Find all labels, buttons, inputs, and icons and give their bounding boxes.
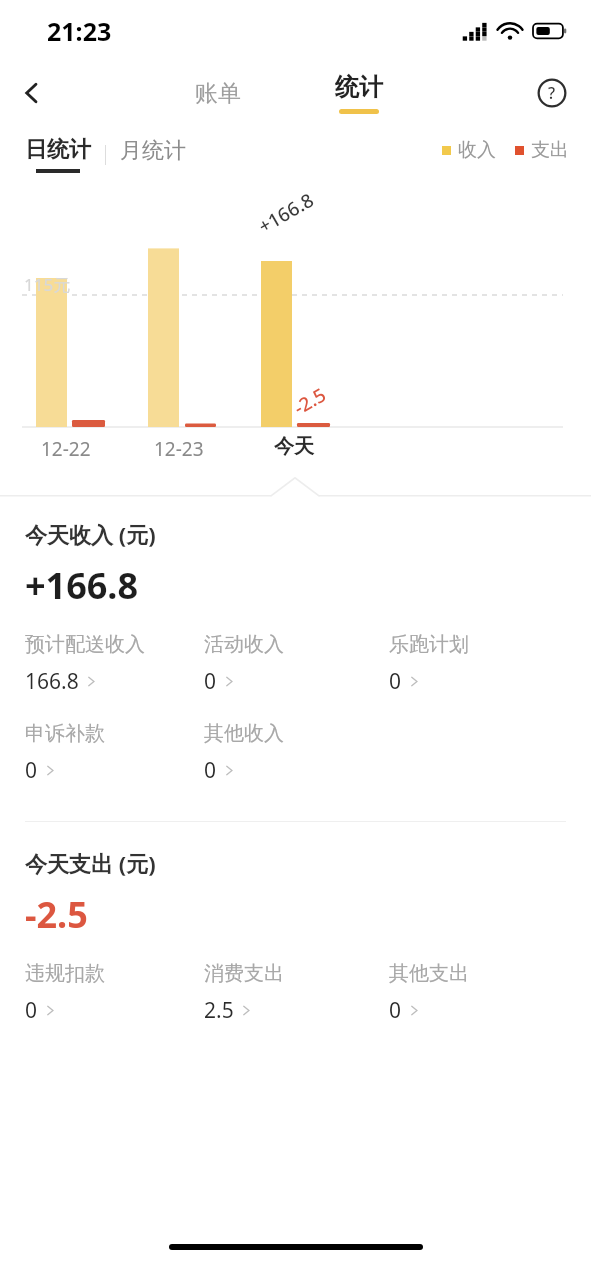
staticText: 违规扣款: [25, 961, 105, 986]
button[interactable]: Back: [10, 71, 54, 115]
button[interactable]: 日统计: [25, 134, 91, 175]
staticText: 0: [204, 667, 217, 696]
staticText: 收入: [458, 138, 496, 162]
staticText: 其他收入: [204, 721, 284, 746]
staticText: 21:23: [47, 14, 112, 48]
button[interactable]: Help: [531, 72, 573, 114]
staticText: 支出: [531, 138, 569, 162]
button[interactable]: 账单: [181, 73, 255, 114]
staticText: 2.5: [204, 996, 234, 1025]
button[interactable]: 消费支出: [204, 961, 284, 1025]
button[interactable]: 月统计: [120, 137, 186, 173]
staticText: 115元: [24, 273, 71, 296]
staticText: 今天支出 (元): [25, 848, 156, 878]
staticText: 消费支出: [204, 961, 284, 986]
staticText: 其他支出: [389, 961, 469, 986]
staticText: 统计: [335, 72, 383, 102]
staticText: 日统计: [25, 136, 91, 164]
button[interactable]: 其他收入: [204, 721, 284, 785]
staticText: -2.5: [25, 890, 88, 939]
staticText: 0: [389, 996, 402, 1025]
button[interactable]: 其他支出: [389, 961, 469, 1025]
staticText: 0: [25, 756, 38, 785]
staticText: 166.8: [25, 667, 79, 696]
staticText: 今天收入 (元): [25, 519, 156, 549]
button[interactable]: 违规扣款: [25, 961, 105, 1025]
staticText: 0: [389, 667, 402, 696]
staticText: 活动收入: [204, 632, 284, 657]
staticText: 申诉补款: [25, 721, 105, 746]
button[interactable]: 预计配送收入: [25, 632, 145, 696]
button[interactable]: 统计: [323, 68, 395, 118]
staticText: 预计配送收入: [25, 632, 145, 657]
staticText: 账单: [195, 79, 241, 108]
staticText: 0: [204, 756, 217, 785]
button[interactable]: 申诉补款: [25, 721, 105, 785]
button[interactable]: 乐跑计划: [389, 632, 469, 696]
staticText: +166.8: [25, 561, 139, 610]
staticText: 今天: [274, 434, 314, 459]
staticText: 月统计: [120, 137, 186, 165]
staticText: 0: [25, 996, 38, 1025]
staticText: 12-23: [154, 436, 204, 462]
staticText: 12-22: [41, 436, 91, 462]
staticText: -2.5: [289, 381, 331, 421]
staticText: 乐跑计划: [389, 632, 469, 657]
button[interactable]: 活动收入: [204, 632, 284, 696]
staticText: ?: [548, 82, 556, 104]
staticText: +166.8: [253, 187, 318, 239]
